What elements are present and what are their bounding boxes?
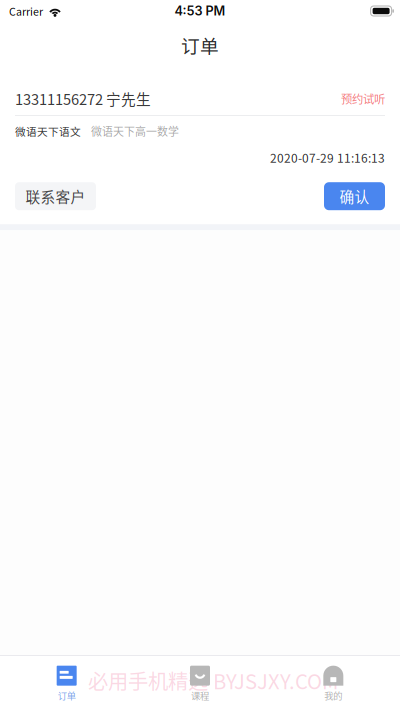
staticText: 4:53 PM [174,3,225,19]
staticText: 13311156272 宁先生 [15,88,151,109]
button[interactable]: 我的 [267,656,400,710]
staticText: 微语天下高一数学 [91,123,179,139]
staticText: 确认 [339,186,369,207]
staticText: 订单 [58,689,76,702]
button[interactable]: 联系客户 [15,182,96,210]
staticText: 2020-07-29 11:16:13 [270,149,385,166]
staticText: 课程 [191,689,209,702]
staticText: Carrier [9,3,43,19]
staticText: 我的 [324,689,342,702]
button[interactable]: 课程 [133,656,267,710]
button[interactable]: 确认 [324,182,385,210]
staticText: 微语天下语文 [15,123,81,139]
staticText: 订单 [181,31,219,58]
button[interactable]: 订单 [0,656,133,710]
staticText: 联系客户 [25,186,85,207]
staticText: 必用手机精选 BYJSJXY.COM [88,666,338,695]
staticText: 预约试听 [341,90,385,107]
